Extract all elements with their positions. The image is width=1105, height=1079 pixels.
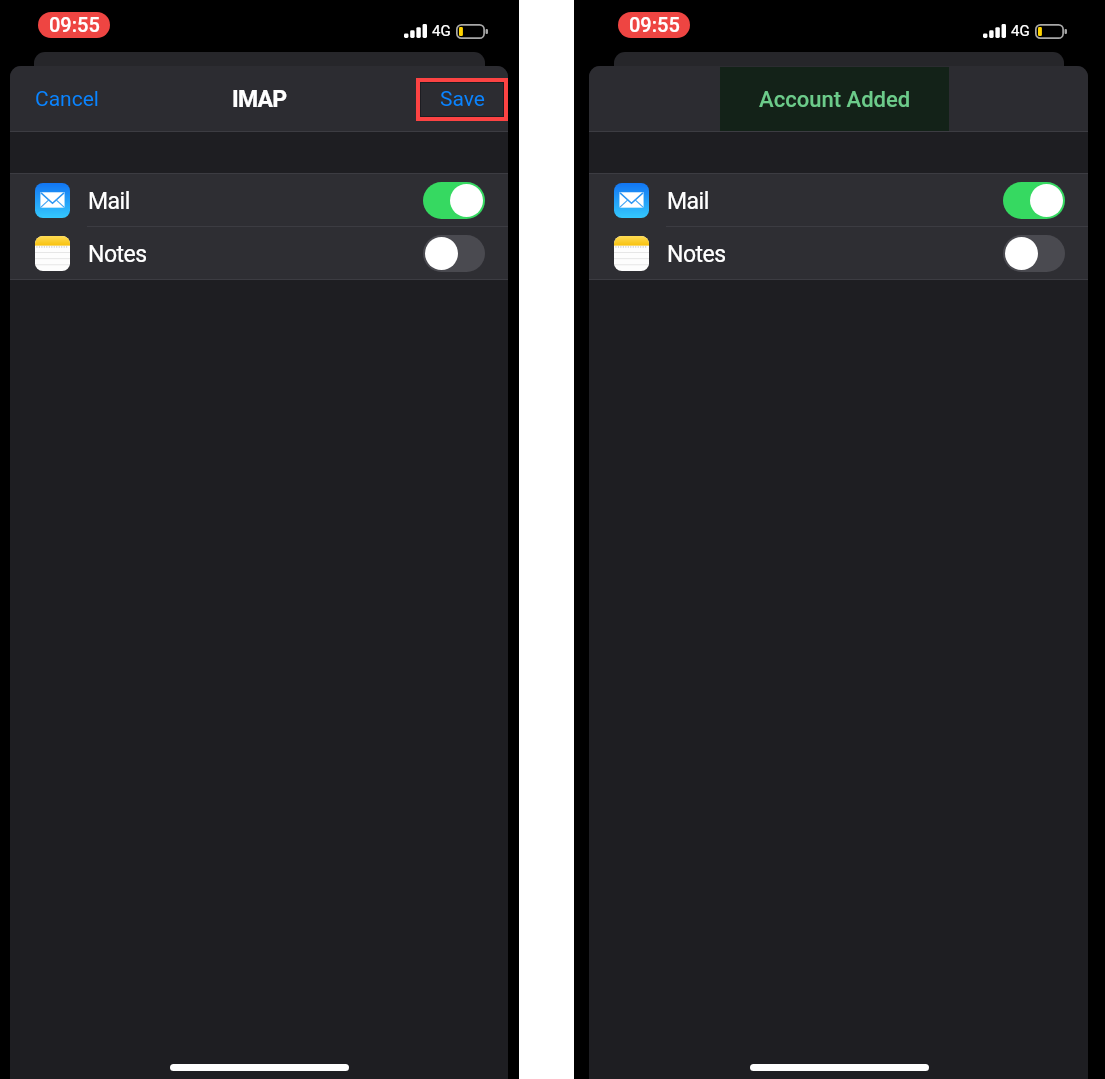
button[interactable]: On xyxy=(423,182,485,219)
button[interactable]: Notes xyxy=(589,227,1088,280)
button[interactable]: Notes xyxy=(10,227,508,280)
button[interactable]: Cancel xyxy=(10,77,113,121)
button[interactable]: Off xyxy=(423,235,485,272)
button[interactable]: On xyxy=(1003,182,1065,219)
staticText: Mail xyxy=(88,188,130,215)
button[interactable]: Mail xyxy=(10,174,508,227)
staticText: Notes xyxy=(667,241,726,268)
button[interactable]: Off xyxy=(1003,235,1065,272)
staticText: Mail xyxy=(667,188,709,215)
staticText: Save xyxy=(440,87,485,112)
staticText: 09:55 xyxy=(629,13,680,36)
staticText: 4G xyxy=(1011,22,1030,40)
staticText: 09:55 xyxy=(49,13,100,36)
staticText: IMAP xyxy=(232,86,287,113)
staticText: Account Added xyxy=(759,87,911,113)
button[interactable]: Mail xyxy=(589,174,1088,227)
button[interactable]: Save xyxy=(421,83,503,116)
button[interactable]: Account Added xyxy=(720,67,949,132)
staticText: 4G xyxy=(432,22,451,40)
staticText: Notes xyxy=(88,241,147,268)
staticText: Cancel xyxy=(35,87,99,112)
